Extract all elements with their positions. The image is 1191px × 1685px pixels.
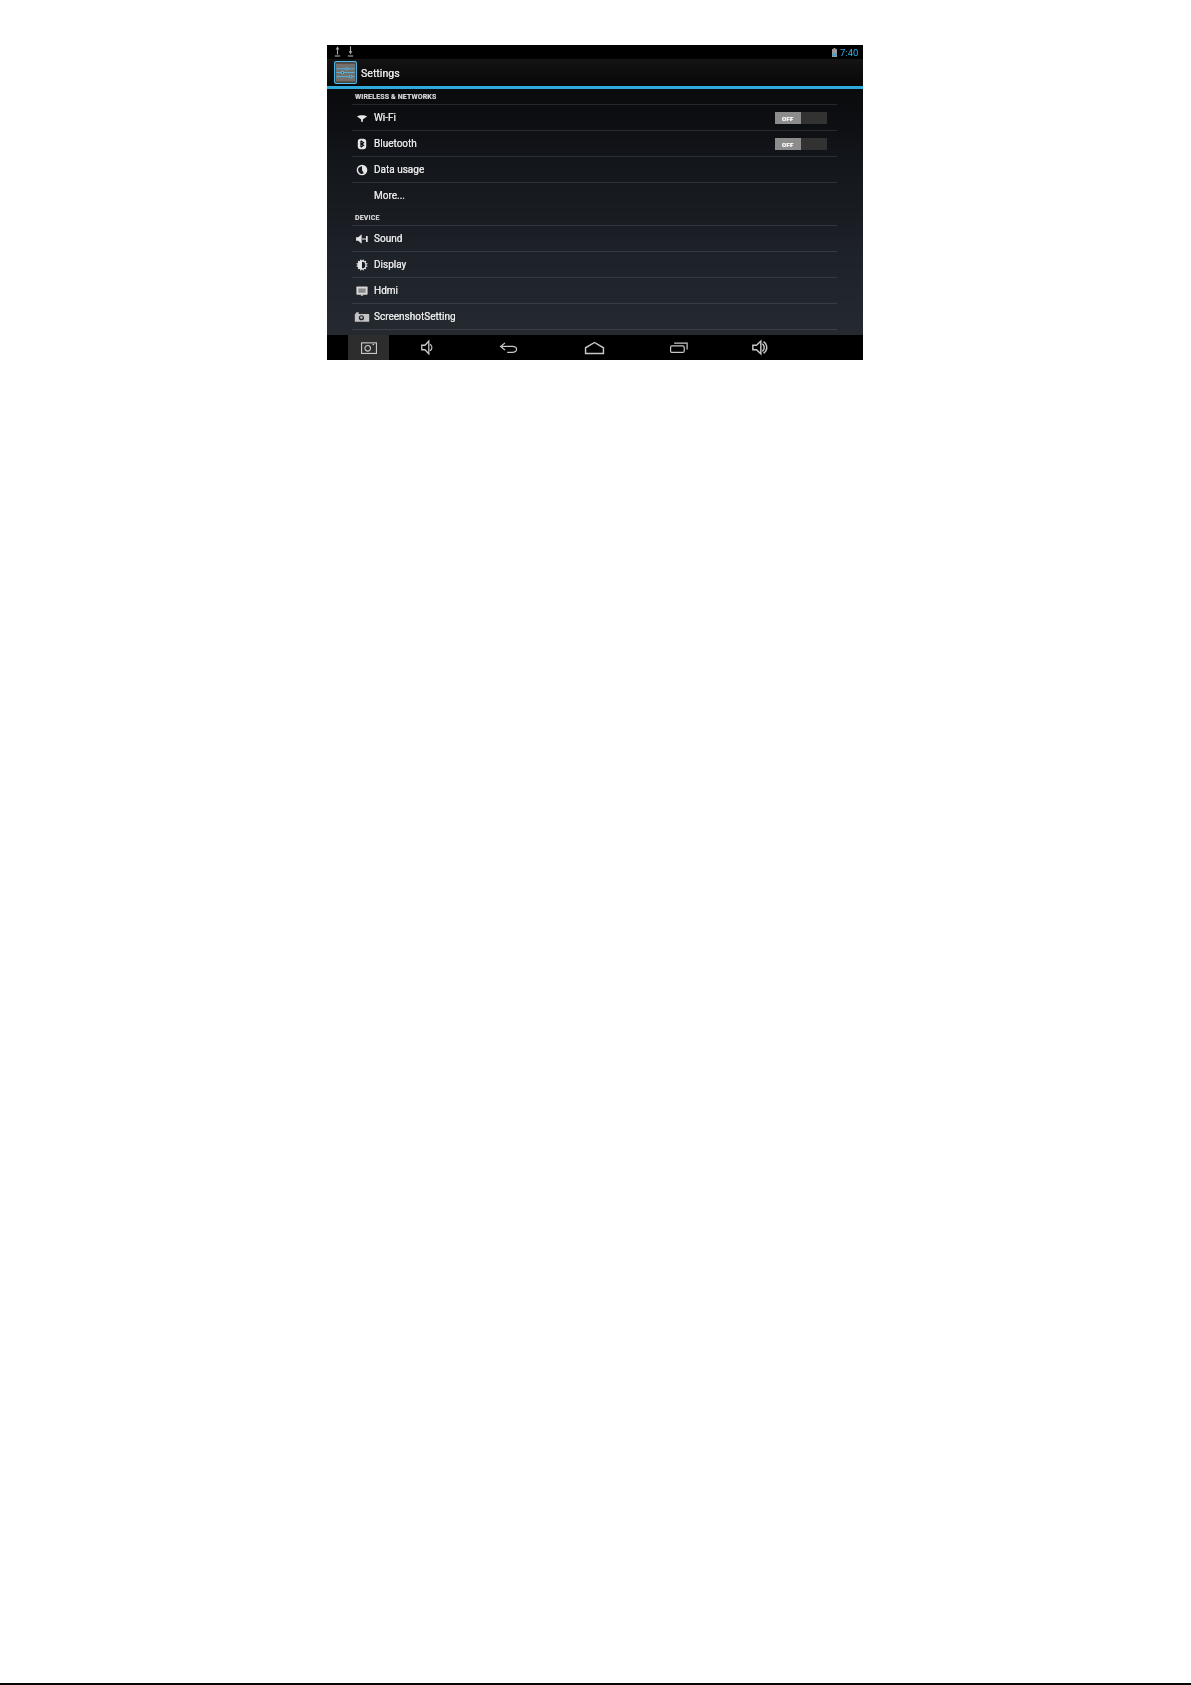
staticText: DEVICE (355, 214, 380, 222)
button[interactable]: Bluetooth (327, 131, 863, 157)
button[interactable]: Sound (327, 226, 863, 252)
staticText: More... (374, 190, 405, 202)
staticText: Bluetooth (374, 138, 417, 150)
staticText: Display (374, 259, 407, 271)
staticText: Wi-Fi (374, 112, 397, 124)
staticText: Settings (361, 67, 400, 79)
staticText: 7:40 (840, 47, 859, 58)
button[interactable]: OFF (775, 112, 827, 124)
staticText: OFF (782, 115, 794, 122)
staticText: ScreenshotSetting (374, 311, 456, 323)
staticText: Sound (374, 233, 403, 245)
button[interactable]: Home (580, 335, 608, 360)
staticText: Hdmi (374, 285, 398, 297)
button[interactable]: Screenshot (348, 335, 389, 360)
button[interactable]: Display (327, 252, 863, 278)
button[interactable]: Settings (327, 59, 863, 86)
button[interactable]: Volume down (414, 335, 442, 360)
staticText: Data usage (374, 164, 425, 176)
button[interactable]: Wi-Fi (327, 105, 863, 131)
button[interactable]: Back (495, 335, 523, 360)
button[interactable]: Data usage (327, 157, 863, 183)
button[interactable]: More... (327, 183, 863, 209)
button[interactable]: Recents (665, 335, 693, 360)
button[interactable]: OFF (775, 138, 827, 150)
staticText: WIRELESS & NETWORKS (355, 93, 437, 101)
button[interactable]: Hdmi (327, 278, 863, 304)
button[interactable]: ScreenshotSetting (327, 304, 863, 330)
staticText: OFF (782, 141, 794, 148)
button[interactable]: Volume up (746, 335, 774, 360)
